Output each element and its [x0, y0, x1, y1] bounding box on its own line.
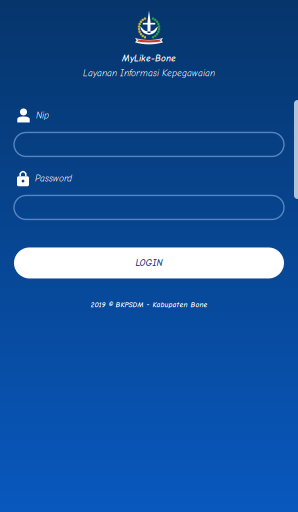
staticText: Layanan Informasi Kepegawaian: [83, 68, 215, 78]
staticText: Nip: [36, 110, 49, 121]
button[interactable]: LOGIN: [14, 247, 284, 278]
staticText: Password: [35, 173, 72, 184]
staticText: LOGIN: [135, 258, 162, 268]
staticText: MyLike-Bone: [122, 53, 176, 64]
staticText: 2019 © BKPSDM - Kabupaten Bone: [90, 300, 207, 309]
